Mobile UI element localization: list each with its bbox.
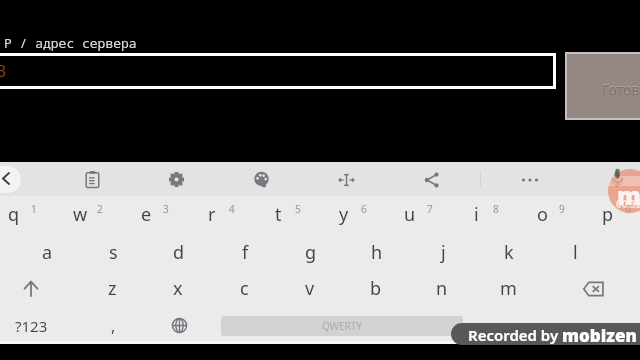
button[interactable]: Clipboard	[71, 163, 113, 196]
button[interactable]: Recording controls	[608, 169, 640, 213]
button[interactable]: Готово	[565, 52, 640, 120]
button[interactable]: Themes	[240, 163, 282, 196]
staticText: y	[339, 202, 349, 227]
button[interactable]: o	[509, 196, 575, 233]
staticText: q	[8, 202, 20, 227]
button[interactable]: p	[575, 196, 640, 233]
button[interactable]: k	[476, 234, 542, 271]
button[interactable]	[0, 53, 556, 89]
button[interactable]: e	[113, 196, 179, 233]
button[interactable]: u	[377, 196, 443, 233]
staticText: 5	[295, 202, 301, 216]
staticText: e	[141, 202, 152, 227]
staticText: 9	[559, 202, 565, 216]
staticText: 4	[229, 202, 235, 216]
staticText: g	[305, 240, 317, 265]
button[interactable]: c	[211, 270, 277, 307]
button[interactable]: i	[443, 196, 509, 233]
staticText: ?123	[15, 316, 48, 336]
staticText: c	[240, 276, 249, 301]
staticText: f	[242, 240, 249, 265]
button[interactable]: Shift	[0, 270, 62, 307]
staticText: P / адрес сервера	[4, 34, 137, 52]
staticText: t	[275, 202, 282, 227]
button[interactable]: b	[343, 270, 409, 307]
staticText: w	[73, 202, 88, 227]
staticText: 2	[97, 202, 103, 216]
staticText: o	[537, 202, 548, 227]
button[interactable]: j	[410, 234, 476, 271]
staticText: p	[602, 202, 614, 227]
button[interactable]: y	[311, 196, 377, 233]
button[interactable]: Share	[411, 163, 453, 196]
button[interactable]: n	[409, 270, 475, 307]
staticText: Recorded by	[468, 325, 559, 345]
staticText: 6	[361, 202, 367, 216]
button[interactable]: Change language	[146, 309, 212, 342]
staticText: 1	[31, 202, 37, 216]
staticText: Готово	[602, 79, 640, 98]
staticText: 7	[427, 202, 433, 216]
button[interactable]: m	[475, 270, 541, 307]
staticText: h	[371, 240, 383, 265]
button[interactable]: z	[79, 270, 145, 307]
button[interactable]: Settings	[155, 163, 197, 196]
button[interactable]: r	[179, 196, 245, 233]
button[interactable]: w	[47, 196, 113, 233]
button[interactable]: QWERTY	[221, 316, 463, 336]
staticText: v	[305, 276, 315, 301]
staticText: m	[617, 179, 640, 212]
button[interactable]: h	[344, 234, 410, 271]
button[interactable]: v	[277, 270, 343, 307]
staticText: mobizen	[562, 324, 637, 345]
button[interactable]: a	[14, 234, 80, 271]
button[interactable]: d	[146, 234, 212, 271]
staticText: Готово	[602, 80, 640, 99]
button[interactable]: Hide toolbar	[0, 166, 21, 193]
staticText: 3	[163, 202, 169, 216]
staticText: ,	[111, 315, 116, 337]
staticText: 00:32	[616, 197, 640, 211]
staticText: 3	[0, 60, 7, 82]
button[interactable]: q	[0, 196, 47, 233]
button[interactable]: t	[245, 196, 311, 233]
staticText: a	[42, 240, 53, 265]
button[interactable]: f	[212, 234, 278, 271]
button[interactable]: l	[542, 234, 608, 271]
staticText: z	[108, 276, 117, 301]
staticText: l	[573, 240, 578, 265]
button[interactable]: ?123	[0, 309, 62, 342]
staticText: QWERTY	[322, 319, 363, 333]
button[interactable]: Move cursor	[325, 163, 367, 196]
staticText: s	[109, 240, 118, 265]
staticText: n	[436, 276, 448, 301]
button[interactable]: Voice input	[596, 163, 638, 196]
staticText: 8	[493, 202, 499, 216]
staticText: j	[441, 240, 446, 265]
staticText: x	[173, 276, 183, 301]
staticText: b	[370, 276, 382, 301]
staticText: m	[500, 276, 517, 301]
button[interactable]: More options	[509, 163, 551, 196]
button[interactable]: ,	[80, 309, 146, 342]
staticText: r	[208, 202, 216, 227]
staticText: 0	[625, 202, 631, 216]
button[interactable]: x	[145, 270, 211, 307]
button[interactable]: s	[80, 234, 146, 271]
staticText: u	[404, 202, 416, 227]
staticText: i	[474, 202, 479, 227]
staticText: k	[504, 240, 514, 265]
button[interactable]: g	[278, 234, 344, 271]
button[interactable]: Backspace	[560, 270, 626, 307]
staticText: d	[173, 240, 185, 265]
